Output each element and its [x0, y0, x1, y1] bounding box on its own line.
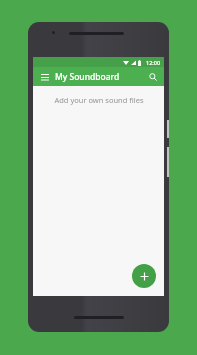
- button[interactable]: Search: [146, 70, 159, 83]
- staticText: Add your own sound files: [54, 95, 144, 105]
- staticText: My Soundboard: [55, 71, 146, 83]
- button[interactable]: Open navigation drawer: [38, 70, 51, 83]
- staticText: 12:00: [146, 59, 161, 66]
- button[interactable]: Add sound: [132, 264, 156, 288]
